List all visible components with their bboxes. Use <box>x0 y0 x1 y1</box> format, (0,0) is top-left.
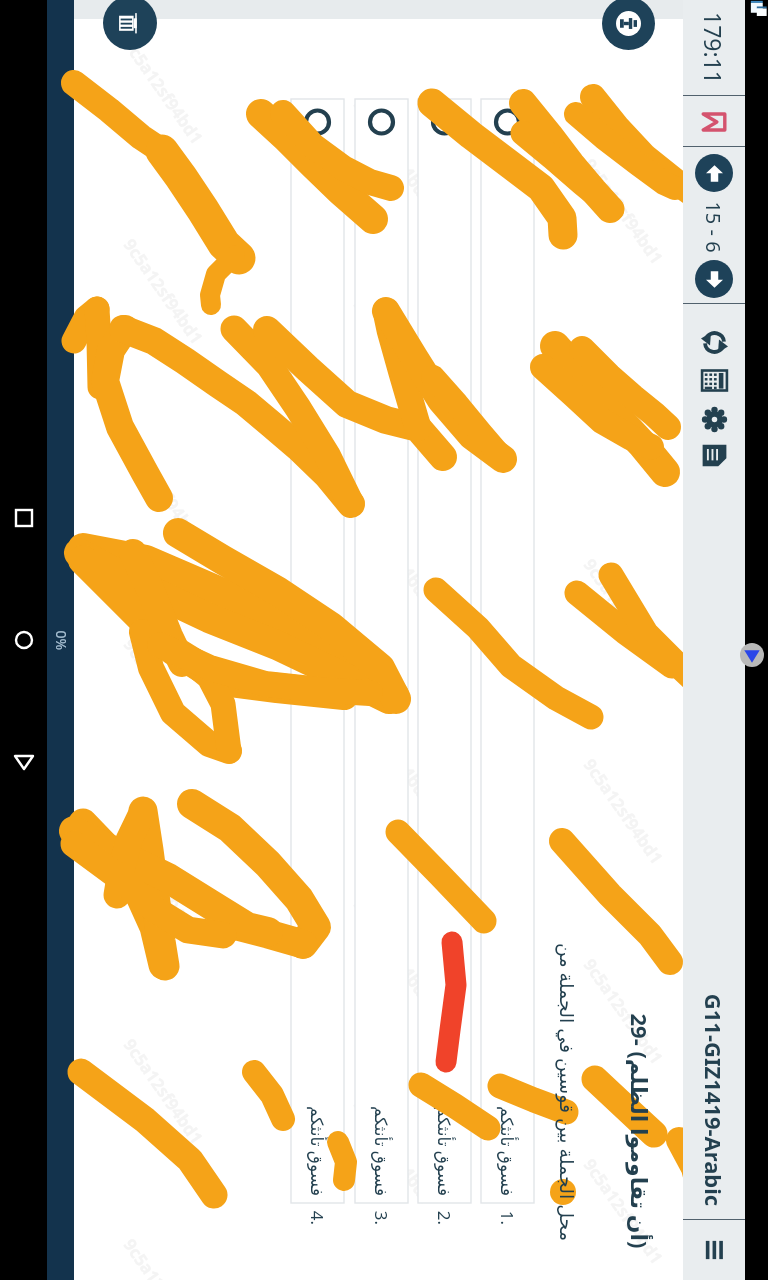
button[interactable]: Home <box>11 627 37 653</box>
button[interactable]: Question list <box>103 0 157 50</box>
button[interactable]: Flag question <box>683 97 745 147</box>
staticText: 1. <box>496 1200 519 1236</box>
button[interactable]: More options <box>683 1225 745 1275</box>
button[interactable]: Next question <box>683 256 745 302</box>
button[interactable]: Refresh <box>683 323 745 361</box>
staticText: 9c5a12sf94bd1 <box>579 754 668 868</box>
staticText: 9c5a12sf94bd1 <box>349 694 438 808</box>
button[interactable] <box>481 99 534 1203</box>
staticText: 9c5a12sf94bd1 <box>349 94 438 208</box>
staticText: 9c5a12sf94bd1 <box>349 894 438 1008</box>
staticText: 2. <box>433 1200 456 1236</box>
staticText: 9c5a12sf94bd1 <box>579 1154 668 1268</box>
staticText: 9c5a12sf94bd1 <box>579 554 668 668</box>
button[interactable] <box>418 99 471 1203</box>
staticText: فسوق تأنثكم <box>306 1103 329 1199</box>
button[interactable]: Notes <box>683 436 745 474</box>
staticText: فسوق تأنثكم <box>370 1103 393 1199</box>
staticText: 9c5a12sf94bd1 <box>579 954 668 1068</box>
staticText: 29- (أن تقاوموا الظلم) <box>625 996 655 1266</box>
button[interactable] <box>291 99 344 1203</box>
staticText: فسوق تأنثكم <box>433 1103 456 1199</box>
staticText: G11-GIZ1419-Arabic <box>699 988 729 1212</box>
button[interactable]: Settings <box>683 400 745 438</box>
staticText: 9c5a12sf94bd1 <box>579 154 668 268</box>
staticText: 9c5a12sf94bd1 <box>119 434 208 548</box>
button[interactable]: Remaining time 179:11 <box>683 0 745 95</box>
staticText: 4. <box>306 1200 329 1236</box>
staticText: 9c5a12sf94bd1 <box>349 1094 438 1208</box>
button[interactable]: Previous question <box>683 150 745 196</box>
staticText: 9c5a12sf94bd1 <box>119 1034 208 1148</box>
button[interactable]: Exam tools <box>602 0 655 50</box>
staticText: 9c5a12sf94bd1 <box>579 354 668 468</box>
button[interactable] <box>355 99 408 1203</box>
staticText: فسوق تأنثكم <box>496 1103 519 1199</box>
button[interactable]: Calculator <box>683 361 745 399</box>
staticText: 9c5a12sf94bd1 <box>349 294 438 408</box>
button[interactable]: Back <box>11 749 37 775</box>
staticText: 9c5a12sf94bd1 <box>349 494 438 608</box>
staticText: محل الجملة بين قوسين في الجملة من الإعرا… <box>554 922 580 1262</box>
staticText: 15 - 6 <box>700 182 727 272</box>
staticText: 9c5a12sf94bd1 <box>119 834 208 948</box>
staticText: 0% <box>51 630 70 650</box>
staticText: 9c5a12sf94bd1 <box>119 234 208 348</box>
button[interactable]: Recents <box>11 505 37 531</box>
staticText: 3. <box>370 1200 393 1236</box>
staticText: 9c5a12sf94bd1 <box>119 34 208 148</box>
staticText: 179:11 <box>698 0 729 108</box>
staticText: 9c5a12sf94bd1 <box>119 634 208 748</box>
